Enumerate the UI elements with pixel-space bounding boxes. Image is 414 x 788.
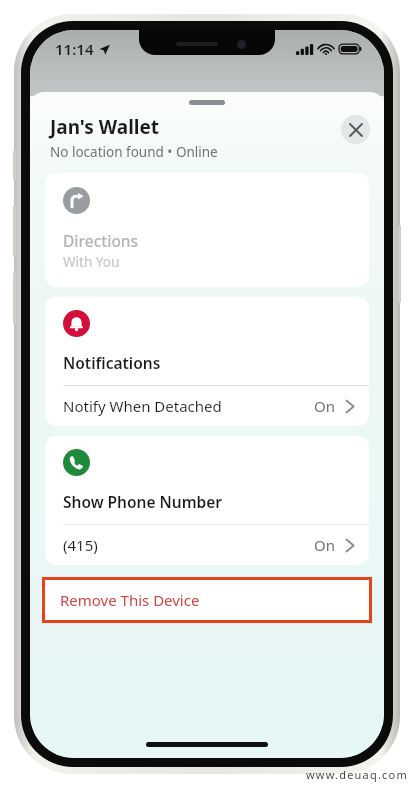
button[interactable]: (415) xyxy=(45,525,369,565)
staticText: Jan's Wallet xyxy=(50,114,160,140)
staticText: (415) xyxy=(63,535,98,555)
staticText: On xyxy=(314,535,335,555)
button[interactable]: Notify When Detached xyxy=(45,386,369,426)
button[interactable]: Directions xyxy=(45,173,369,287)
staticText: No location found • Online xyxy=(50,143,218,161)
button[interactable]: Remove This Device xyxy=(45,580,369,620)
staticText: With You xyxy=(63,253,120,271)
staticText: www.deuaq.com xyxy=(306,767,408,782)
staticText: Notify When Detached xyxy=(63,396,222,416)
staticText: Remove This Device xyxy=(60,590,200,610)
staticText: Directions xyxy=(63,230,139,251)
button[interactable]: Close xyxy=(341,115,370,144)
staticText: Notifications xyxy=(63,352,161,373)
button[interactable]: Notifications xyxy=(45,297,369,426)
button[interactable]: Show Phone Number xyxy=(45,436,369,565)
staticText: Show Phone Number xyxy=(63,491,223,512)
staticText: On xyxy=(314,396,335,416)
staticText: 11:14 xyxy=(55,39,94,59)
